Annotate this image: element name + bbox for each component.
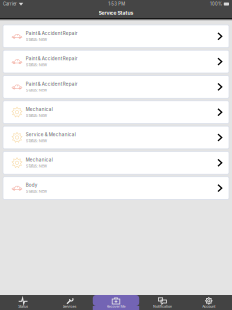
button[interactable]: Body [3,177,229,199]
staticText: Mechanical [26,106,53,112]
staticText: Mechanical [26,157,53,163]
staticText: Account [202,304,215,309]
button[interactable]: Mechanical [3,101,229,124]
button[interactable]: Account [186,295,232,310]
staticText: Service & Mechanical [26,132,76,137]
staticText: 1:53 PM [108,1,125,7]
staticText: Body [26,182,38,188]
staticText: Status: New [26,164,47,168]
button[interactable]: Recover Me [93,295,139,310]
staticText: Status: New [26,138,47,143]
button[interactable]: Paint & Accident Repair [3,75,229,98]
button[interactable]: Paint & Accident Repair [3,25,229,48]
button[interactable]: Services [46,295,93,310]
button[interactable]: Mechanical [3,151,229,174]
button[interactable]: Service & Mechanical [3,126,229,149]
staticText: 100% [210,1,222,7]
staticText: Service Status [98,10,133,16]
staticText: Paint & Accident Repair [26,31,78,36]
staticText: Paint & Accident Repair [26,81,78,87]
staticText: Services [63,304,77,309]
staticText: Notification [153,304,172,309]
staticText: Status: New [26,113,47,118]
staticText: Status: New [26,88,47,92]
staticText: Paint & Accident Repair [26,56,78,61]
staticText: Carrier [3,1,17,7]
staticText: Status: New [26,62,47,67]
button[interactable]: Notification [139,295,186,310]
staticText: Status: New [26,37,47,42]
button[interactable]: Status [0,295,46,310]
staticText: Recover Me [106,304,125,309]
staticText: Status: New [26,189,47,194]
staticText: Status [18,304,28,309]
button[interactable]: Paint & Accident Repair [3,50,229,73]
